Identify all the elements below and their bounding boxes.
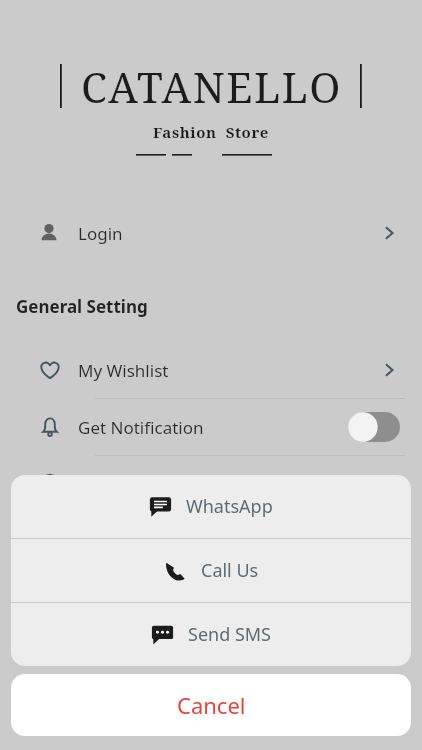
other: Open: [378, 473, 400, 495]
button[interactable]: WhatsApp: [11, 475, 411, 538]
staticText: Language: [78, 473, 378, 496]
staticText: Send SMS: [188, 622, 271, 647]
staticText: Get Notification: [78, 416, 348, 439]
button[interactable]: Cancel: [11, 674, 411, 736]
staticText: General Setting: [16, 295, 148, 318]
staticText: CATANELLO: [81, 58, 342, 114]
staticText: WhatsApp: [186, 494, 273, 519]
staticText: Call Us: [201, 558, 259, 583]
other: Open: [378, 222, 400, 244]
other: Open: [378, 359, 400, 381]
button[interactable]: Language: [0, 456, 422, 512]
button[interactable]: Call Us: [11, 539, 411, 602]
button[interactable]: My Wishlist: [0, 342, 422, 398]
button[interactable]: Send SMS: [11, 603, 411, 666]
staticText: Login: [78, 222, 378, 245]
staticText: Fashion Store: [153, 122, 270, 142]
button[interactable]: Get Notification: [0, 399, 422, 455]
staticText: My Wishlist: [78, 359, 378, 382]
button[interactable]: Login: [0, 205, 422, 261]
staticText: Cancel: [177, 690, 246, 720]
button[interactable]: Get Notification toggle: [348, 412, 400, 442]
